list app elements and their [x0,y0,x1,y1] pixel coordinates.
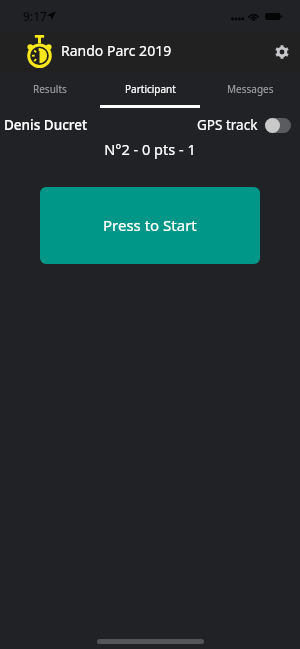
button[interactable]: Press to Start [40,187,260,264]
staticText: Participant [125,82,176,96]
staticText: Rando Parc 2019 [61,41,172,60]
staticText: GPS track [197,116,258,134]
button[interactable]: Settings [268,38,295,65]
button[interactable]: GPS track [197,116,291,134]
staticText: N°2 - 0 pts - 1 [0,139,300,159]
staticText: Results [33,82,67,96]
button[interactable]: Participant [100,73,200,107]
staticText: Press to Start [103,215,197,235]
staticText: Denis Ducret [4,116,88,134]
staticText: 9:17 [23,8,47,24]
button[interactable]: Results [0,73,100,107]
staticText: Messages [227,82,274,96]
button[interactable]: Messages [200,73,300,107]
